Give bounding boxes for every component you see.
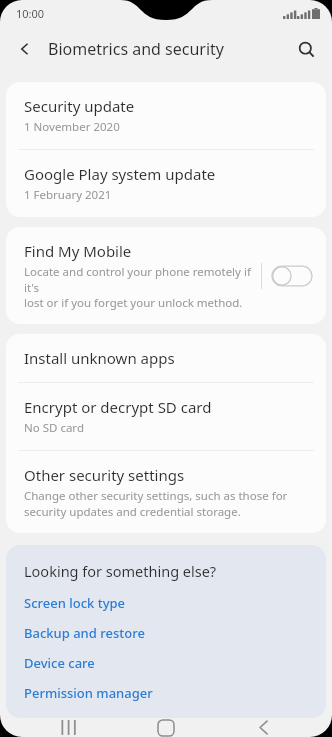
- staticText: Encrypt or decrypt SD card: [24, 397, 212, 417]
- staticText: Security update: [24, 96, 135, 116]
- button[interactable]: Backup and restore: [24, 624, 308, 642]
- button[interactable]: Search: [286, 29, 326, 69]
- staticText: Install unknown apps: [24, 348, 175, 368]
- staticText: Screen lock type: [24, 594, 126, 612]
- staticText: Other security settings: [24, 465, 185, 485]
- staticText: 10:00: [16, 6, 45, 21]
- button[interactable]: Back: [235, 718, 293, 737]
- staticText: Google Play system update: [24, 164, 216, 184]
- staticText: No SD card: [24, 420, 84, 436]
- button[interactable]: Security update: [6, 82, 326, 149]
- staticText: Permission manager: [24, 684, 153, 702]
- button[interactable]: Google Play system update: [6, 150, 326, 217]
- staticText: 1 February 2021: [24, 187, 112, 203]
- button[interactable]: Install unknown apps: [6, 334, 326, 382]
- staticText: Backup and restore: [24, 624, 145, 642]
- button[interactable]: Recents: [40, 718, 98, 737]
- staticText: Change other security settings, such as …: [24, 488, 288, 519]
- staticText: 1 November 2020: [24, 119, 120, 135]
- staticText: Find My Mobile: [24, 241, 132, 261]
- button[interactable]: Device care: [24, 654, 308, 672]
- button[interactable]: Permission manager: [24, 684, 308, 702]
- staticText: Device care: [24, 654, 95, 672]
- button[interactable]: Screen lock type: [24, 594, 308, 612]
- button[interactable]: Encrypt or decrypt SD card: [6, 383, 326, 450]
- staticText: Locate and control your phone remotely i…: [24, 264, 261, 310]
- staticText: Biometrics and security: [48, 38, 225, 60]
- button[interactable]: Home: [137, 718, 195, 737]
- staticText: Looking for something else?: [24, 561, 217, 581]
- button[interactable]: Find My Mobile: [6, 227, 326, 324]
- button[interactable]: Back: [6, 30, 44, 68]
- button[interactable]: Other security settings: [6, 451, 326, 533]
- button[interactable]: Find My Mobile toggle: [272, 263, 312, 289]
